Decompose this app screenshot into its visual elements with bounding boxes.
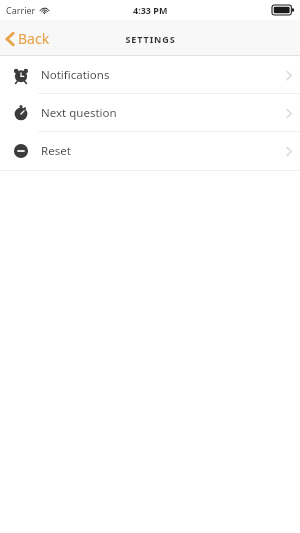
staticText: Carrier <box>6 4 36 16</box>
staticText: 4:33 PM <box>133 4 168 16</box>
staticText: Next question <box>41 105 117 121</box>
staticText: Notifications <box>41 67 110 83</box>
button[interactable]: Reset <box>0 132 300 170</box>
button[interactable]: Notifications <box>0 56 300 94</box>
staticText: Reset <box>41 143 71 159</box>
staticText: Back <box>18 29 50 48</box>
button[interactable]: Back <box>0 25 60 52</box>
button[interactable]: Next question <box>0 94 300 132</box>
staticText: SETTINGS <box>125 33 176 45</box>
